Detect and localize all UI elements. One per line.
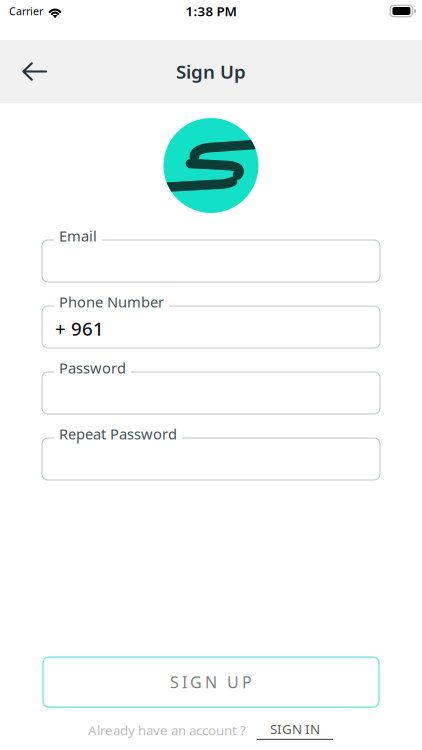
staticText: Phone Number <box>59 292 164 311</box>
staticText: Sign Up <box>176 59 246 84</box>
staticText: Already have an account ? <box>88 721 246 739</box>
button[interactable]: S I G N U P <box>43 657 379 707</box>
button[interactable]: Back <box>10 46 59 97</box>
staticText: Carrier <box>9 4 43 18</box>
staticText: Password <box>59 358 126 377</box>
button[interactable]: SIGN IN <box>246 720 334 740</box>
staticText: 1:38 PM <box>185 2 236 20</box>
staticText: Email <box>59 226 97 245</box>
staticText: SIGN IN <box>270 720 320 738</box>
staticText: + 961 <box>55 316 104 341</box>
staticText: Repeat Password <box>59 424 177 443</box>
staticText: S I G N U P <box>170 671 252 693</box>
